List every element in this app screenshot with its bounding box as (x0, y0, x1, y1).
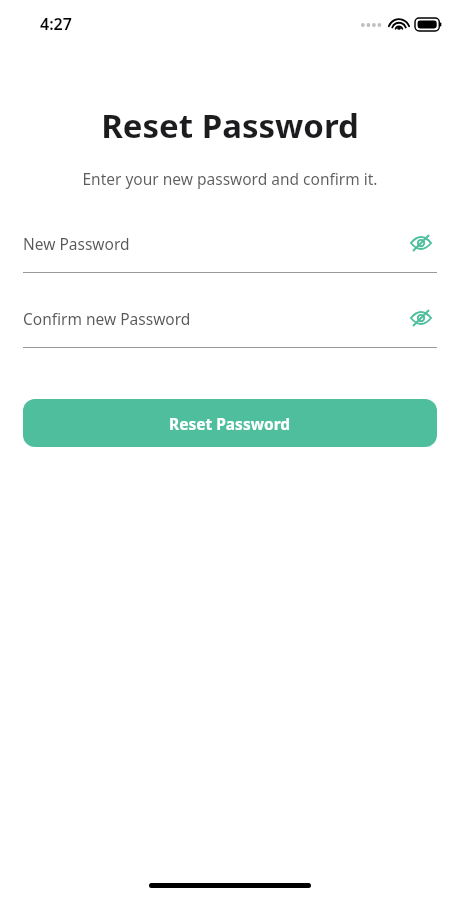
staticText: Confirm new Password (23, 308, 405, 329)
button[interactable]: Show password (405, 303, 437, 333)
staticText: New Password (23, 233, 405, 254)
staticText: 4:27 (40, 13, 72, 35)
button[interactable]: Reset Password (23, 399, 437, 447)
button[interactable]: Show password (405, 228, 437, 258)
staticText: Reset Password (169, 413, 291, 434)
staticText: Enter your new password and confirm it. (82, 168, 378, 189)
staticText: Reset Password (101, 103, 359, 148)
